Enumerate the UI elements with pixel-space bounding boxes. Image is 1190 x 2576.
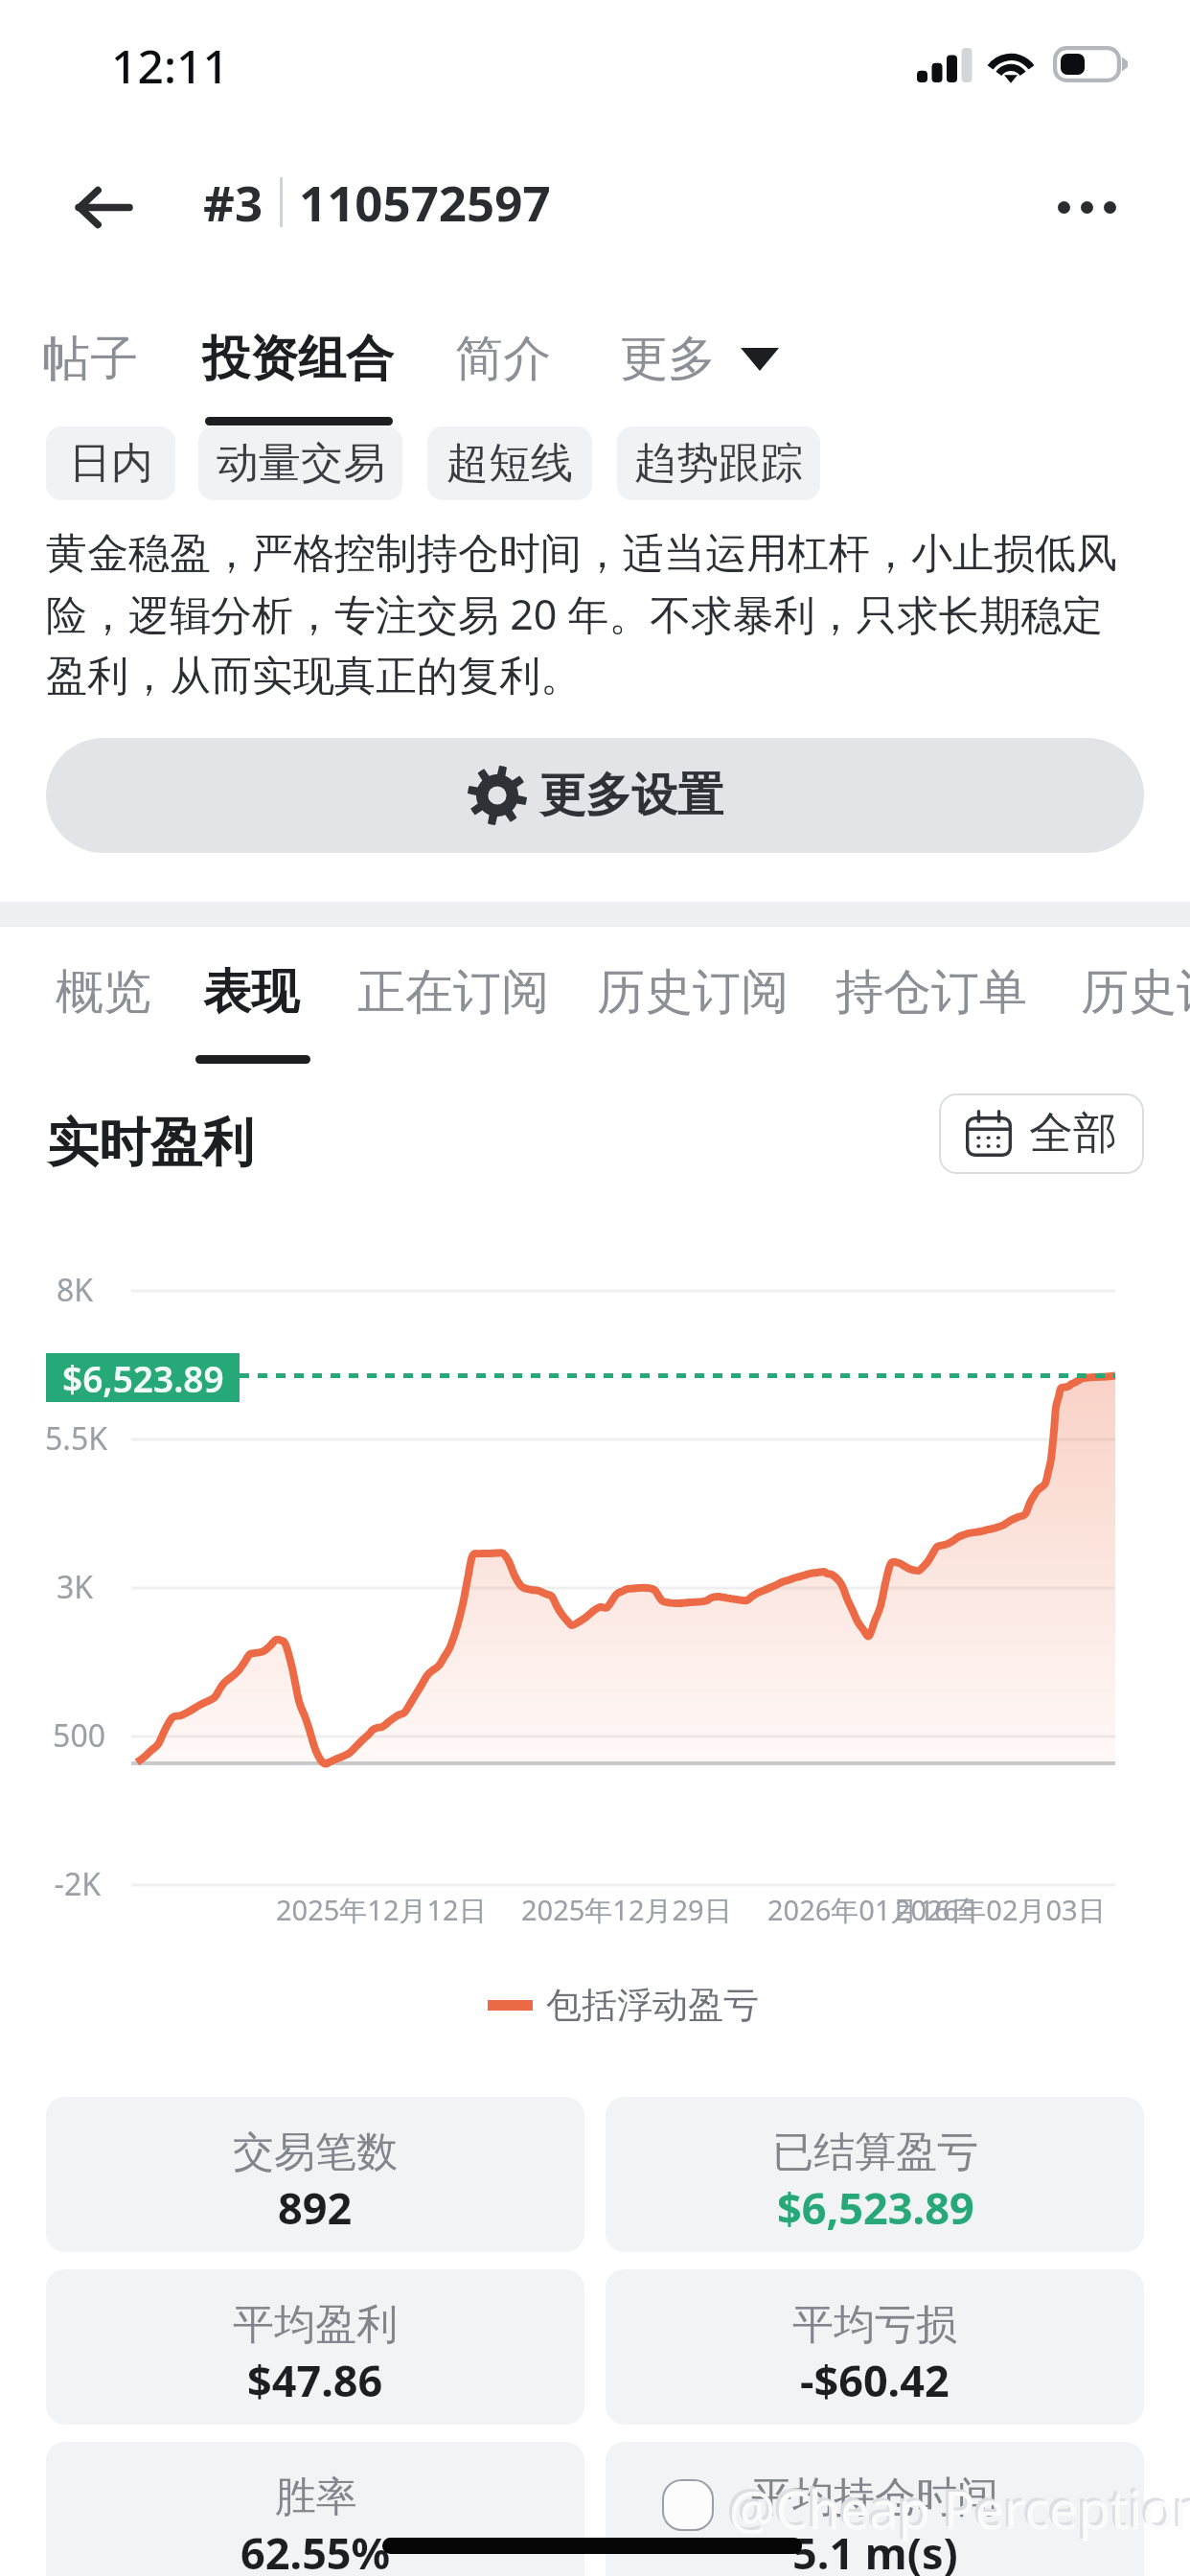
button[interactable]: 简介 <box>436 316 570 401</box>
staticText: 持仓订单 <box>835 962 1027 1023</box>
staticText: $6,523.89 <box>62 1354 224 1402</box>
button[interactable]: 平均亏损 <box>606 2269 1144 2425</box>
staticText: 包括浮动盈亏 <box>546 1983 759 2028</box>
staticText: 平均亏损 <box>792 2299 957 2351</box>
staticText: 2026年01月16日 <box>767 1891 978 1929</box>
button[interactable]: 更多设置 <box>46 738 1144 853</box>
staticText: 更多设置 <box>539 767 723 824</box>
button[interactable]: 投资组合 <box>173 316 423 401</box>
staticText: 500 <box>53 1714 105 1757</box>
staticText: $6,523.89 <box>777 2178 974 2237</box>
staticText: 2025年12月12日 <box>276 1891 487 1929</box>
staticText: 5.1 m(s) <box>792 2523 958 2576</box>
button[interactable]: 历史订阅 <box>1081 951 1190 1033</box>
staticText: #3 <box>203 169 263 235</box>
button[interactable]: Back <box>46 149 161 264</box>
button[interactable]: 日内 <box>46 426 175 500</box>
button[interactable]: 更多 <box>620 316 812 401</box>
staticText: 历史订阅 <box>1081 962 1190 1023</box>
staticText: 更多 <box>620 329 716 389</box>
staticText: 正在订阅 <box>357 962 549 1023</box>
button[interactable]: 动量交易 <box>198 426 402 500</box>
staticText: 黄金稳盈，严格控制持仓时间，适当运用杠杆，小止损低风险，逻辑分析，专注交易 20… <box>46 528 1125 702</box>
staticText: 已结算盈亏 <box>772 2127 978 2178</box>
button[interactable]: 趋势跟踪 <box>617 426 820 500</box>
staticText: -$60.42 <box>800 2351 950 2409</box>
staticText: 110572597 <box>299 169 551 235</box>
button[interactable]: 正在订阅 <box>337 951 568 1033</box>
staticText: 日内 <box>69 437 153 490</box>
staticText: @Cheap Perception65 <box>726 2471 1190 2541</box>
staticText: 趋势跟踪 <box>634 437 803 490</box>
staticText: 简介 <box>455 329 551 389</box>
staticText: 8K <box>56 1269 93 1311</box>
button[interactable]: 平均持仓时间 <box>606 2442 1144 2576</box>
staticText: 超短线 <box>446 437 573 490</box>
staticText: 投资组合 <box>202 329 394 389</box>
staticText: 2025年12月29日 <box>521 1891 732 1929</box>
staticText: 历史订阅 <box>597 962 789 1023</box>
staticText: 12:11 <box>111 34 229 97</box>
staticText: 实时盈利 <box>47 1111 254 1176</box>
staticText: 平均持仓时间 <box>751 2472 998 2523</box>
staticText: 62.55% <box>240 2523 391 2576</box>
button[interactable]: 胜率 <box>46 2442 584 2576</box>
button[interactable]: More options <box>1029 149 1144 264</box>
button[interactable]: 平均盈利 <box>46 2269 584 2425</box>
button[interactable]: 已结算盈亏 <box>606 2097 1144 2252</box>
staticText: 胜率 <box>275 2472 357 2523</box>
button[interactable]: 表现 <box>181 951 321 1033</box>
staticText: 5.5K <box>45 1417 107 1460</box>
staticText: -2K <box>54 1863 101 1905</box>
button[interactable]: 持仓订单 <box>816 951 1046 1033</box>
staticText: @Cheap Perception65 <box>729 2473 1190 2544</box>
staticText: 3K <box>56 1566 93 1608</box>
button[interactable]: 帖子 <box>18 316 162 401</box>
button[interactable]: 全部 <box>939 1093 1144 1174</box>
staticText: 892 <box>278 2178 353 2237</box>
button[interactable]: 交易笔数 <box>46 2097 584 2252</box>
staticText: 2026年02月03日 <box>895 1891 1106 1929</box>
staticText: 交易笔数 <box>233 2127 398 2178</box>
button[interactable]: 超短线 <box>427 426 592 500</box>
staticText: 平均盈利 <box>233 2299 398 2351</box>
staticText: 全部 <box>1029 1106 1117 1161</box>
button[interactable]: 概览 <box>34 951 172 1033</box>
staticText: 概览 <box>56 962 151 1023</box>
staticText: 帖子 <box>42 329 138 389</box>
staticText: 动量交易 <box>217 437 385 490</box>
staticText: 表现 <box>203 962 299 1023</box>
staticText: $47.86 <box>247 2351 383 2409</box>
button[interactable]: 历史订阅 <box>576 951 809 1033</box>
